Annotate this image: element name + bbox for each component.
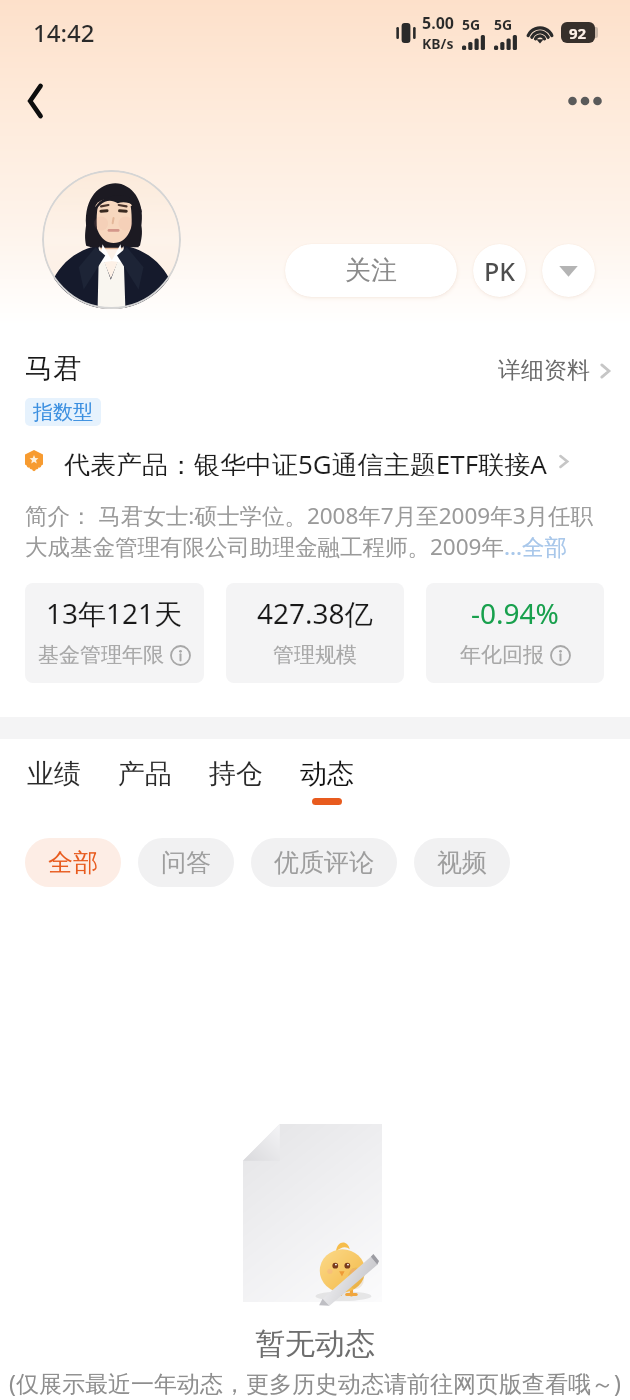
staticText: PK (484, 254, 516, 288)
button[interactable]: 视频 (414, 838, 510, 887)
staticText: 简介： 马君女士:硕士学位。2008年7月至2009年3月任职 (25, 500, 594, 531)
button[interactable]: 业绩 (27, 757, 81, 805)
button[interactable]: 代表产品：银华中证5G通信主题ETF联接A (25, 446, 612, 476)
staticText: 马君 (25, 351, 81, 386)
staticText: 年化回报 (460, 642, 544, 668)
button[interactable]: 指数型 (25, 398, 101, 426)
button[interactable]: Expand (542, 244, 595, 297)
button[interactable]: More options (561, 77, 609, 125)
staticText: 详细资料 (498, 356, 590, 385)
staticText: KB/s (422, 34, 454, 53)
staticText: 14:42 (33, 16, 95, 49)
staticText: 代表产品：银华中证5G通信主题ETF联接A (64, 446, 547, 476)
staticText: ...全部 (504, 531, 568, 562)
button[interactable]: 产品 (118, 757, 172, 805)
button[interactable]: 动态 (300, 757, 354, 805)
button[interactable]: 全部 (25, 838, 121, 887)
staticText: 13年121天 (46, 594, 183, 632)
staticText: 产品 (118, 757, 172, 791)
staticText: 管理规模 (273, 642, 357, 668)
button[interactable]: 详细资料 (498, 356, 614, 385)
staticText: 动态 (300, 757, 354, 791)
button[interactable]: 问答 (138, 838, 234, 887)
staticText: 全部 (48, 847, 98, 878)
button[interactable]: 优质评论 (251, 838, 397, 887)
staticText: 暂无动态 (0, 1325, 630, 1363)
staticText: 业绩 (27, 757, 81, 791)
staticText: 关注 (345, 254, 397, 287)
staticText: 大成基金管理有限公司助理金融工程师。2009年 (25, 531, 504, 562)
staticText: 问答 (161, 847, 211, 878)
button[interactable]: 13年121天 (25, 583, 204, 683)
staticText: 5.00 (422, 12, 454, 34)
staticText: 92 (569, 23, 587, 43)
button[interactable]: 持仓 (209, 757, 263, 805)
button[interactable]: Back (13, 77, 61, 125)
button[interactable]: 关注 (285, 244, 457, 297)
button[interactable]: PK (473, 244, 526, 297)
button[interactable]: -0.94% (426, 583, 604, 683)
button[interactable]: 427.38亿 (226, 583, 404, 683)
staticText: -0.94% (471, 594, 559, 632)
staticText: 优质评论 (274, 847, 374, 878)
staticText: 持仓 (209, 757, 263, 791)
staticText: 视频 (437, 847, 487, 878)
staticText: 5G (462, 15, 481, 34)
button[interactable]: Profile photo (42, 170, 181, 309)
staticText: 基金管理年限 (38, 642, 164, 668)
staticText: 427.38亿 (257, 594, 373, 632)
staticText: (仅展示最近一年动态，更多历史动态请前往网页版查看哦～) (0, 1367, 630, 1398)
staticText: 5G (494, 15, 513, 34)
staticText: 指数型 (33, 400, 93, 425)
